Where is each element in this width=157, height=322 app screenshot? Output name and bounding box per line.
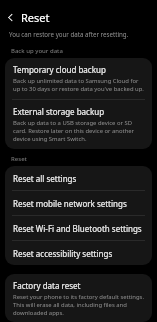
button[interactable]: Temporary cloud backup — [5, 58, 152, 99]
staticText: Back up unlimited data to Samsung Cloud … — [13, 77, 144, 93]
staticText: Reset Wi-Fi and Bluetooth settings — [13, 223, 142, 234]
button[interactable]: External storage backup — [5, 100, 152, 149]
button[interactable]: Factory data reset — [5, 274, 152, 322]
staticText: Temporary cloud backup — [13, 64, 106, 75]
staticText: Back up data to a USB storage device or … — [13, 119, 144, 143]
staticText: You can restore your data after resettin… — [9, 30, 129, 38]
staticText: Reset your phone to its factory default … — [13, 293, 144, 316]
staticText: Reset all settings — [13, 173, 77, 184]
button[interactable]: Reset mobile network settings — [5, 191, 152, 215]
button[interactable]: Back — [0, 7, 21, 28]
staticText: Reset — [21, 10, 50, 25]
staticText: Back up your data — [11, 47, 63, 55]
staticText: External storage backup — [13, 106, 105, 117]
button[interactable]: Reset all settings — [5, 166, 152, 190]
staticText: Reset mobile network settings — [13, 198, 127, 209]
button[interactable]: Reset accessibility settings — [5, 241, 152, 265]
staticText: Reset accessibility settings — [13, 248, 113, 259]
staticText: Reset — [11, 155, 27, 163]
button[interactable]: Reset Wi-Fi and Bluetooth settings — [5, 216, 152, 240]
staticText: Factory data reset — [13, 280, 81, 291]
